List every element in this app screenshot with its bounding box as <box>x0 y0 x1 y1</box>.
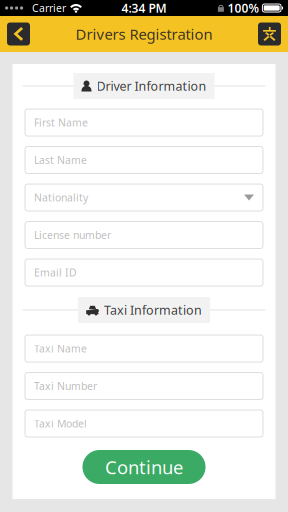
staticText: 4:34 PM <box>121 0 166 16</box>
button[interactable]: Email ID <box>25 259 263 286</box>
staticText: First Name <box>34 115 88 130</box>
button[interactable]: License number <box>25 221 263 248</box>
staticText: Carrier <box>32 1 66 15</box>
staticText: Continue <box>105 454 183 480</box>
button[interactable]: Back <box>7 22 30 45</box>
button[interactable]: Nationality <box>25 184 263 211</box>
staticText: Last Name <box>34 153 87 167</box>
staticText: 100% <box>227 0 259 16</box>
staticText: License number <box>34 228 111 242</box>
button[interactable]: Taxi Name <box>25 335 263 362</box>
button[interactable]: Last Name <box>25 146 263 173</box>
staticText: Email ID <box>34 265 77 280</box>
button[interactable]: Taxi Number <box>25 372 263 399</box>
button[interactable]: Taxi Model <box>25 410 263 437</box>
staticText: Driver Information <box>96 77 206 94</box>
staticText: Taxi Number <box>34 379 97 393</box>
button[interactable]: Continue <box>82 450 205 484</box>
staticText: Taxi Name <box>34 341 87 356</box>
staticText: Taxi Model <box>34 416 87 431</box>
button[interactable]: First Name <box>25 109 263 136</box>
staticText: Nationality <box>34 190 88 205</box>
staticText: Taxi Information <box>104 301 202 318</box>
staticText: Drivers Registration <box>75 24 212 44</box>
button[interactable]: Change language <box>258 22 281 45</box>
